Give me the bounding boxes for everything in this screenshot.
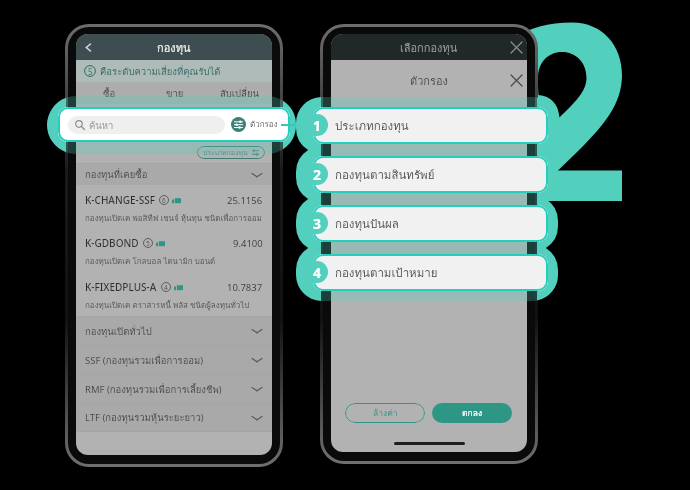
button[interactable]: ตัวกรอง: [231, 112, 278, 137]
button[interactable]: ประเภทกองทุน: [203, 146, 259, 159]
staticText: ประเภทกองทุน: [203, 147, 248, 158]
staticText: สับเปลี่ยน: [220, 86, 259, 101]
staticText: 2: [313, 165, 322, 184]
button[interactable]: กองทุนเปิดทั่วไป: [76, 317, 272, 345]
staticText: ประเภทกองทุน: [335, 117, 409, 135]
staticText: 6: [162, 196, 166, 205]
button[interactable]: กองทุนตามสินทรัพย์: [313, 156, 548, 193]
button[interactable]: ซื้อ: [76, 82, 142, 104]
staticText: K-FIXEDPLUS-A: [85, 280, 157, 294]
staticText: RMF (กองทุนรวมเพื่อการเลี้ยงชีพ): [85, 382, 222, 397]
staticText: คือระดับความเสี่ยงที่คุณรับได้: [100, 64, 221, 79]
staticText: 4: [313, 263, 322, 282]
staticText: 25.1156: [227, 194, 263, 207]
button[interactable]: ขาย: [142, 82, 207, 104]
button[interactable]: LTF (กองทุนรวมหุ้นระยะยาว): [76, 404, 272, 431]
staticText: กองทุนเปิดเค ตราสารหนี้ พลัส ชนิดผู้ลงทุ…: [85, 299, 250, 312]
button[interactable]: Close: [505, 36, 527, 58]
staticText: กองทุนตามสินทรัพย์: [335, 166, 435, 184]
staticText: SSF (กองทุนรวมเพื่อการออม): [85, 353, 204, 368]
button[interactable]: Back: [76, 35, 100, 59]
button[interactable]: ประเภทกองทุน: [313, 107, 548, 144]
staticText: K-CHANGE-SSF: [85, 193, 155, 207]
staticText: ตัวกรอง: [410, 72, 448, 89]
staticText: 3: [313, 214, 322, 233]
staticText: กองทุนที่เคยซื้อ: [85, 167, 148, 182]
button[interactable]: ค้นหา: [58, 107, 290, 142]
button[interactable]: สับเปลี่ยน: [207, 82, 272, 104]
staticText: 9.4100: [233, 237, 263, 250]
staticText: 4: [164, 283, 168, 292]
button[interactable]: K-CHANGE-SSF: [76, 185, 272, 228]
staticText: LTF (กองทุนรวมหุ้นระยะยาว): [85, 410, 204, 425]
staticText: ค้นหา: [89, 118, 114, 133]
staticText: 1: [313, 116, 322, 135]
staticText: 10.7837: [227, 281, 263, 294]
staticText: 5: [88, 66, 93, 77]
staticText: ตัวกรอง: [250, 118, 278, 131]
button[interactable]: SSF (กองทุนรวมเพื่อการออม): [76, 346, 272, 374]
staticText: 5: [146, 239, 150, 248]
staticText: ล้างค่า: [373, 406, 398, 420]
staticText: ซื้อ: [103, 86, 116, 101]
staticText: K-GDBOND: [85, 236, 139, 250]
staticText: กองทุนปันผล: [335, 215, 399, 233]
button[interactable]: กองทุนที่เคยซื้อ: [76, 164, 272, 185]
button[interactable]: Close filter: [505, 69, 527, 91]
staticText: กองทุนตามเป้าหมาย: [335, 264, 438, 282]
staticText: ขาย: [166, 86, 184, 101]
button[interactable]: K-FIXEDPLUS-A: [76, 272, 272, 316]
staticText: ตกลง: [462, 406, 483, 420]
button[interactable]: กองทุนปันผล: [313, 205, 548, 242]
staticText: กองทุนเปิดทั่วไป: [85, 324, 152, 339]
staticText: กองทุนเปิดเค โกลบอล ไดนามิก บอนด์: [85, 255, 216, 268]
button[interactable]: RMF (กองทุนรวมเพื่อการเลี้ยงชีพ): [76, 375, 272, 403]
button[interactable]: ล้างค่า: [345, 403, 425, 423]
staticText: กองทุน: [157, 39, 191, 56]
button[interactable]: กองทุนตามเป้าหมาย: [313, 254, 548, 291]
button[interactable]: K-GDBOND: [76, 228, 272, 272]
button[interactable]: ตกลง: [432, 403, 512, 423]
staticText: เลือกกองทุน: [400, 39, 458, 56]
staticText: กองทุนเปิดเค พอสิทีฟ เชนจ์ หุ้นทุน ชนิดเ…: [85, 212, 262, 225]
